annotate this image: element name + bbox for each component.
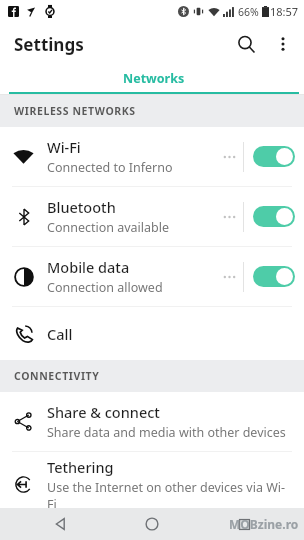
button[interactable]: Mobile data switch — [244, 247, 304, 306]
staticText: Call — [47, 324, 73, 344]
staticText: Connected to Inferno — [47, 159, 173, 176]
button[interactable]: Home — [120, 508, 184, 540]
staticText: Connection allowed — [47, 279, 163, 296]
button[interactable]: Wi-Fi options — [215, 127, 243, 186]
button[interactable]: Tethering — [0, 452, 304, 516]
button[interactable]: Bluetooth switch — [244, 187, 304, 246]
staticText: Wi-Fi — [47, 137, 81, 157]
staticText: 18:57 — [270, 4, 299, 19]
button[interactable]: More options — [266, 27, 300, 61]
staticText: Settings — [14, 33, 84, 56]
button[interactable]: Mobile data options — [215, 247, 243, 306]
staticText: CONNECTIVITY — [14, 369, 100, 383]
staticText: Bluetooth — [47, 197, 116, 217]
button[interactable]: Networks — [9, 66, 299, 94]
staticText: Networks — [123, 70, 185, 87]
staticText: 66% — [238, 5, 259, 19]
button[interactable]: Share & connect — [0, 392, 304, 451]
button[interactable]: Back — [28, 508, 92, 540]
button[interactable]: Bluetooth — [0, 187, 304, 246]
staticText: Share data and media with other devices — [47, 424, 286, 441]
button[interactable]: Mobile data — [0, 247, 304, 306]
button[interactable]: Recent apps — [212, 508, 276, 540]
button[interactable]: Bluetooth options — [215, 187, 243, 246]
staticText: Mobile data — [47, 257, 130, 277]
staticText: Use the Internet on other devices via Wi… — [47, 479, 294, 512]
button[interactable]: Wi-Fi — [0, 127, 304, 186]
staticText: WIRELESS NETWORKS — [14, 104, 136, 118]
staticText: Tethering — [47, 457, 114, 477]
button[interactable]: Call — [0, 307, 304, 360]
button[interactable]: Wi-Fi switch — [244, 127, 304, 186]
staticText: Share & connect — [47, 402, 160, 422]
staticText: MOBzine.ro — [229, 516, 299, 532]
button[interactable]: Search — [226, 24, 266, 64]
staticText: Connection available — [47, 219, 170, 236]
